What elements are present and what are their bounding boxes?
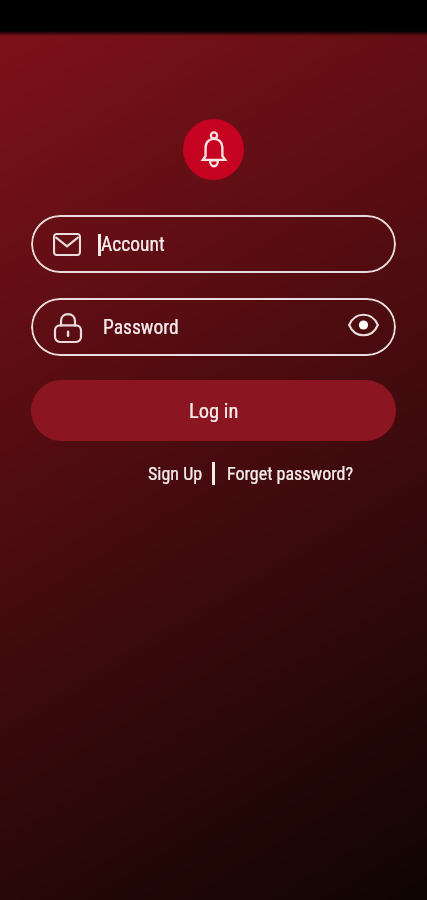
button[interactable]: Sign Up: [145, 460, 206, 487]
button[interactable]: Show password: [347, 309, 379, 341]
button[interactable]: Account: [31, 215, 396, 273]
staticText: Password: [103, 316, 179, 339]
button[interactable]: Forget password?: [224, 460, 357, 487]
button[interactable]: Notifications: [183, 119, 244, 180]
staticText: Forget password?: [227, 463, 354, 484]
button[interactable]: Log in: [31, 380, 396, 441]
staticText: Sign Up: [148, 463, 203, 484]
staticText: Log in: [189, 399, 239, 423]
staticText: Account: [101, 233, 165, 256]
button[interactable]: Password: [31, 298, 396, 356]
